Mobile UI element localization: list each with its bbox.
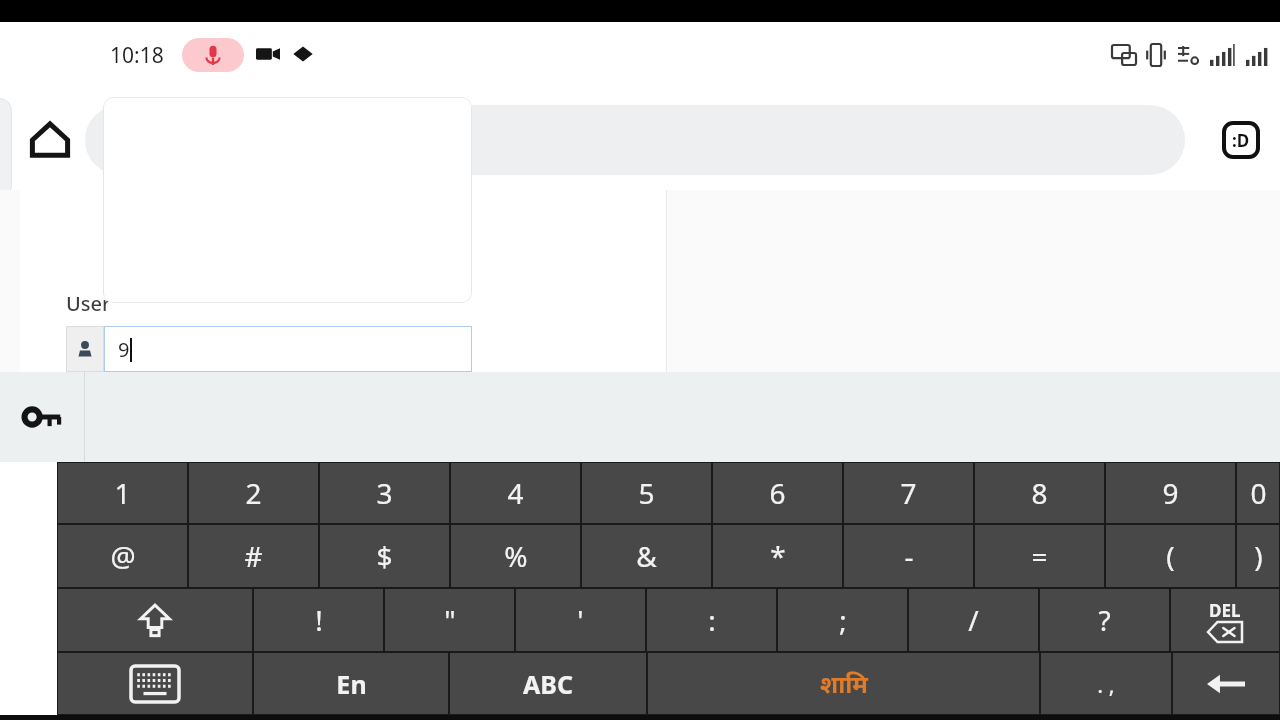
button[interactable]: = (975, 525, 1104, 587)
button[interactable] (58, 589, 252, 651)
staticText: 7 (900, 474, 917, 512)
button[interactable]: . , (1041, 653, 1171, 714)
button[interactable]: ABC (450, 653, 646, 714)
staticText: 3 (376, 474, 393, 512)
staticText: 4 (507, 474, 524, 512)
staticText: 8 (1031, 474, 1048, 512)
button[interactable]: ! (254, 589, 383, 651)
staticText: ? (1098, 601, 1111, 639)
button[interactable]: & (582, 525, 711, 587)
button[interactable] (85, 105, 1185, 175)
button[interactable]: Home (30, 120, 70, 160)
staticText: 1 (114, 474, 131, 512)
button[interactable]: En (254, 653, 448, 714)
staticText: 0 (1250, 474, 1267, 512)
staticText: ) (1254, 537, 1263, 575)
button[interactable]: 4 (451, 463, 580, 523)
button[interactable]: 1 (58, 463, 187, 523)
staticText: & (636, 537, 657, 575)
button[interactable]: Profile (1222, 121, 1260, 159)
staticText: ; (839, 601, 847, 639)
button[interactable]: ' (516, 589, 645, 651)
button[interactable]: शामि (648, 653, 1039, 714)
button[interactable]: - (844, 525, 973, 587)
staticText: 9 (118, 336, 130, 363)
button[interactable] (1173, 653, 1279, 714)
button[interactable]: 8 (975, 463, 1104, 523)
staticText: - (904, 537, 914, 575)
button[interactable]: ? (1040, 589, 1169, 651)
staticText: " (444, 601, 456, 639)
button[interactable]: 6 (713, 463, 842, 523)
button[interactable]: $ (320, 525, 449, 587)
staticText: 5 (638, 474, 655, 512)
other: Microphone in use (182, 38, 244, 72)
button[interactable]: * (713, 525, 842, 587)
button[interactable]: Password suggestions (0, 372, 84, 462)
button[interactable]: ( (1106, 525, 1235, 587)
button[interactable]: 3 (320, 463, 449, 523)
button[interactable]: @ (58, 525, 187, 587)
button[interactable]: " (385, 589, 514, 651)
staticText: En (336, 667, 367, 701)
button[interactable]: % (451, 525, 580, 587)
staticText: # (244, 537, 263, 575)
button[interactable]: DEL (1171, 589, 1279, 651)
button[interactable]: # (189, 525, 318, 587)
staticText: ! (315, 601, 323, 639)
staticText: 9 (1162, 474, 1179, 512)
button[interactable] (58, 653, 252, 714)
staticText: $ (376, 537, 393, 575)
staticText: ABC (523, 667, 573, 701)
other: Layers (292, 43, 314, 65)
staticText: * (770, 537, 786, 575)
staticText: :D (1232, 129, 1250, 152)
staticText: @ (110, 537, 136, 575)
button[interactable]: 9 (66, 326, 472, 372)
button[interactable]: 5 (582, 463, 711, 523)
staticText: = (1031, 537, 1048, 575)
staticText: . , (1097, 669, 1115, 699)
staticText: % (504, 537, 528, 575)
button[interactable]: ; (778, 589, 907, 651)
staticText: : (708, 601, 716, 639)
staticText: ' (577, 601, 584, 639)
button[interactable]: 0 (1237, 463, 1279, 523)
button[interactable]: / (909, 589, 1038, 651)
staticText: शामि (820, 667, 868, 700)
button[interactable] (103, 97, 472, 303)
staticText: 10:18 (110, 41, 164, 70)
staticText: / (968, 601, 979, 639)
staticText: User (66, 290, 111, 317)
staticText: ( (1166, 537, 1175, 575)
button[interactable]: 2 (189, 463, 318, 523)
button[interactable]: 7 (844, 463, 973, 523)
button[interactable]: : (647, 589, 776, 651)
button[interactable]: 9 (1106, 463, 1235, 523)
button[interactable]: ) (1237, 525, 1279, 587)
staticText: 6 (769, 474, 786, 512)
other: Screen recording (256, 42, 280, 66)
staticText: 2 (245, 474, 262, 512)
staticText: DEL (1209, 599, 1241, 622)
